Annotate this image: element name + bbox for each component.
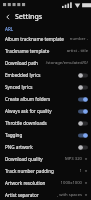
button[interactable]: On xyxy=(77,94,88,105)
staticText: Settings xyxy=(15,12,43,22)
button[interactable]: Album trackname template xyxy=(0,33,91,45)
button[interactable]: Throttle downloads xyxy=(0,117,91,129)
button[interactable]: Off xyxy=(77,142,88,153)
staticText: artist - title xyxy=(66,48,88,54)
staticText: Create album folders xyxy=(5,96,51,102)
staticText: , with spaces xyxy=(56,192,82,198)
button[interactable]: Artwork resolution xyxy=(0,177,91,189)
staticText: MP3 320 xyxy=(64,156,82,162)
staticText: number - title xyxy=(64,36,88,42)
staticText: Download path xyxy=(5,60,38,66)
button[interactable]: Create album folders xyxy=(0,93,91,105)
staticText: Album trackname template xyxy=(5,36,64,42)
staticText: Artwork resolution xyxy=(5,180,46,186)
staticText: ARL xyxy=(5,26,14,32)
button[interactable]: On xyxy=(77,106,88,117)
staticText: Always ask for quality xyxy=(5,108,52,114)
button[interactable]: Synced lyrics xyxy=(0,81,91,93)
button[interactable]: Track number padding xyxy=(0,165,91,177)
staticText: Download quality xyxy=(5,156,43,162)
staticText: Synced lyrics xyxy=(5,84,33,90)
staticText: /storage/emulated/0/Music/Deezer xyxy=(38,60,88,66)
button[interactable]: Artist separator xyxy=(0,189,91,200)
button[interactable]: Embedded lyrics xyxy=(0,69,91,81)
staticText: Artist separator xyxy=(5,192,39,198)
button[interactable]: Off xyxy=(77,118,88,129)
staticText: Trackname template xyxy=(5,48,50,54)
staticText: Embedded lyrics xyxy=(5,72,41,78)
button[interactable]: Download quality xyxy=(0,153,91,165)
button[interactable]: Back xyxy=(0,9,15,24)
staticText: Throttle downloads xyxy=(5,120,47,126)
staticText: 1000x1000 xyxy=(60,180,82,186)
button[interactable]: Off xyxy=(77,82,88,93)
button[interactable]: Off xyxy=(77,70,88,81)
button[interactable]: Download path xyxy=(0,57,91,69)
staticText: Track number padding xyxy=(5,168,54,174)
button[interactable]: PNG artwork xyxy=(0,141,91,153)
button[interactable]: Trackname template xyxy=(0,45,91,57)
staticText: Tagging xyxy=(5,132,23,138)
button[interactable]: On xyxy=(77,130,88,141)
button[interactable]: Tagging xyxy=(0,129,91,141)
staticText: PNG artwork xyxy=(5,144,33,150)
button[interactable]: Always ask for quality xyxy=(0,105,91,117)
staticText: 1 xyxy=(79,168,82,174)
